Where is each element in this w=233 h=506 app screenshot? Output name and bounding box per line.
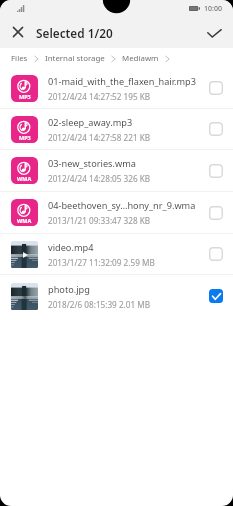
staticText: 10:00 (204, 4, 222, 14)
staticText: 2018/2/6 08:15:39 2.01 MB (48, 299, 151, 310)
button[interactable]: Confirm selection (199, 18, 229, 48)
staticText: photo.jpg (48, 283, 90, 296)
staticText: Selected 1/20 (36, 25, 113, 41)
button[interactable]: photo.jpg (0, 275, 233, 317)
staticText: 2013/1/21 09:33:47 328 KB (48, 215, 151, 226)
staticText: 01-maid_with_the_flaxen_hair.mp3 (48, 75, 197, 88)
staticText: MP3 (19, 93, 31, 100)
staticText: Mediawm (122, 53, 159, 64)
button[interactable]: Close (3, 18, 33, 48)
staticText: 2013/1/27 11:32:09 2.59 MB (48, 257, 155, 268)
staticText: 2012/4/24 14:27:52 195 KB (48, 91, 151, 102)
button[interactable]: Select file (205, 77, 227, 99)
staticText: video.mp4 (48, 241, 94, 254)
button[interactable]: Files (11, 53, 28, 64)
staticText: WMA (17, 175, 32, 182)
staticText: 03-new_stories.wma (48, 157, 136, 170)
button[interactable]: Select file (205, 243, 227, 265)
button[interactable]: Select file (205, 285, 227, 307)
button[interactable]: Select file (205, 118, 227, 140)
button[interactable]: WMA (0, 150, 233, 191)
button[interactable]: Select file (205, 160, 227, 182)
button[interactable]: WMA (0, 192, 233, 233)
button[interactable]: MP3 (0, 109, 233, 149)
button[interactable]: video.mp4 (0, 234, 233, 274)
button[interactable]: Select file (205, 202, 227, 224)
staticText: 2012/4/24 14:27:58 221 KB (48, 132, 151, 143)
staticText: 02-sleep_away.mp3 (48, 116, 133, 129)
button[interactable]: Mediawm (122, 53, 159, 64)
staticText: MP3 (19, 134, 31, 141)
staticText: WMA (17, 217, 32, 224)
button[interactable]: Internal storage (45, 53, 105, 64)
button[interactable]: MP3 (0, 68, 233, 108)
staticText: Internal storage (45, 53, 105, 64)
staticText: 04-beethoven_sy…hony_nr_9.wma (48, 199, 196, 212)
staticText: Files (11, 53, 28, 64)
staticText: 2012/4/24 14:28:05 326 KB (48, 173, 151, 184)
